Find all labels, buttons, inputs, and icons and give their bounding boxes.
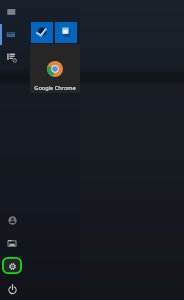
button[interactable]: Account	[8, 216, 17, 225]
button[interactable]: Recently added	[4, 29, 18, 41]
button[interactable]: Settings	[2, 257, 22, 274]
button[interactable]: Google Chrome	[30, 44, 80, 93]
button[interactable]: Menu	[4, 5, 19, 17]
button[interactable]: To Do	[31, 22, 53, 43]
staticText: Google Chrome	[34, 84, 76, 92]
button[interactable]: Power	[8, 285, 17, 294]
button[interactable]: Mail	[55, 22, 77, 43]
button[interactable]: Pictures	[7, 239, 17, 248]
button[interactable]: Most used	[5, 51, 18, 64]
